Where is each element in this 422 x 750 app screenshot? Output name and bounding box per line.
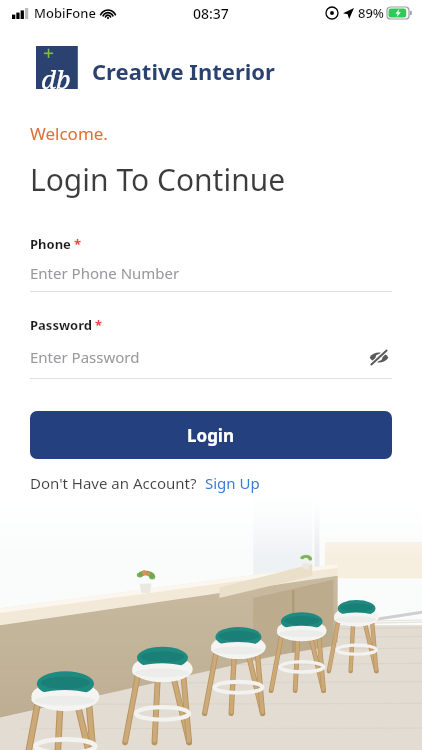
- staticText: Password: [30, 316, 92, 334]
- staticText: Don't Have an Account?: [30, 473, 197, 493]
- button[interactable]: Phone: [30, 235, 392, 292]
- staticText: Phone: [30, 235, 71, 253]
- staticText: Enter Phone Number: [30, 263, 180, 283]
- staticText: 89%: [358, 4, 384, 22]
- staticText: *: [74, 235, 82, 253]
- staticText: *: [95, 316, 103, 334]
- button[interactable]: Show password: [366, 344, 392, 370]
- staticText: 08:37: [193, 4, 229, 23]
- staticText: Login To Continue: [30, 159, 286, 200]
- staticText: MobiFone: [34, 4, 96, 22]
- button[interactable]: Sign Up: [205, 473, 260, 493]
- staticText: db: [41, 61, 71, 96]
- staticText: Login: [187, 424, 235, 447]
- button[interactable]: Enter Password: [30, 347, 366, 367]
- staticText: Creative Interior: [92, 56, 275, 86]
- button[interactable]: Login: [30, 411, 392, 459]
- staticText: Sign Up: [205, 473, 260, 493]
- staticText: Enter Password: [30, 347, 140, 367]
- staticText: Welcome.: [30, 122, 108, 145]
